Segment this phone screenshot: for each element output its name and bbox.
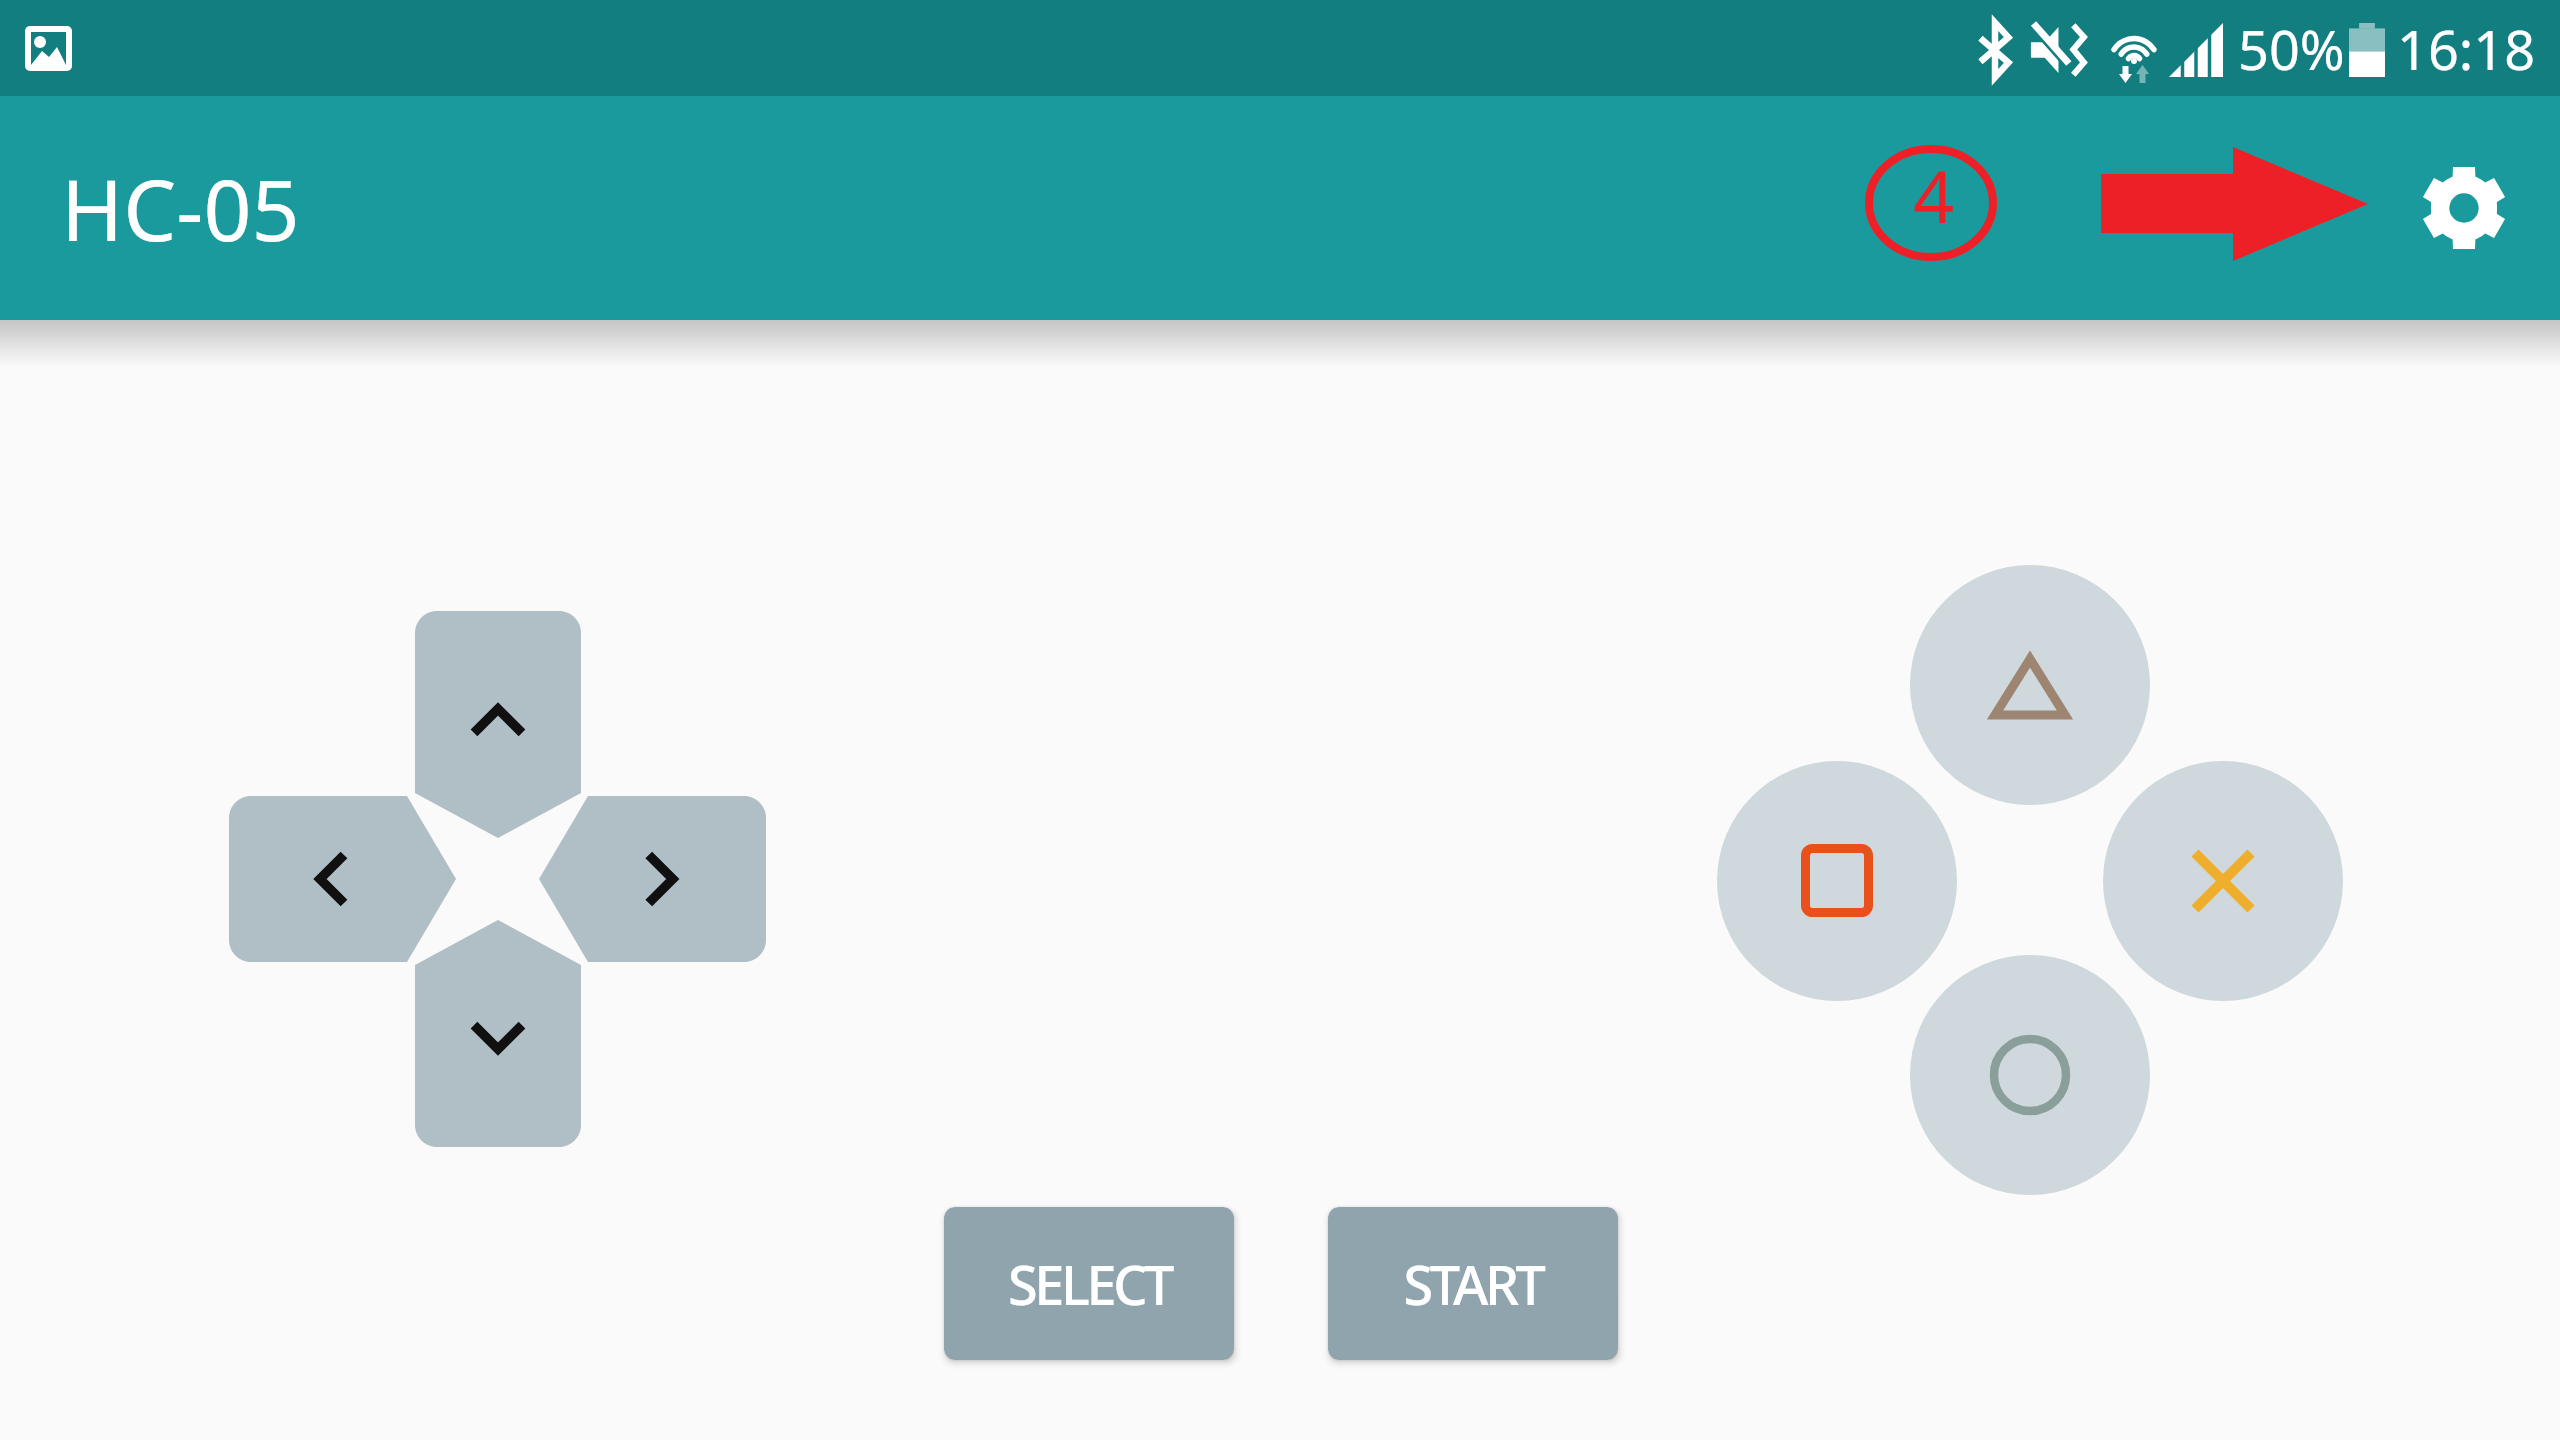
button[interactable]: Circle: [1910, 955, 2150, 1195]
staticText: 50%: [2238, 12, 2345, 86]
button[interactable]: Up: [415, 611, 581, 838]
button[interactable]: Down: [415, 920, 581, 1147]
button[interactable]: Settings: [2408, 152, 2520, 264]
staticText: 4: [1913, 146, 1955, 244]
button[interactable]: Left: [229, 796, 456, 962]
button[interactable]: Square: [1717, 761, 1957, 1001]
button[interactable]: SELECT: [944, 1207, 1234, 1360]
button[interactable]: START: [1328, 1207, 1618, 1360]
button[interactable]: Cross: [2103, 761, 2343, 1001]
button[interactable]: Triangle: [1910, 565, 2150, 805]
staticText: 16:18: [2397, 12, 2536, 86]
staticText: SELECT: [1008, 1247, 1171, 1321]
staticText: START: [1403, 1247, 1543, 1321]
staticText: HC-05: [61, 151, 300, 265]
button[interactable]: Right: [539, 796, 766, 962]
